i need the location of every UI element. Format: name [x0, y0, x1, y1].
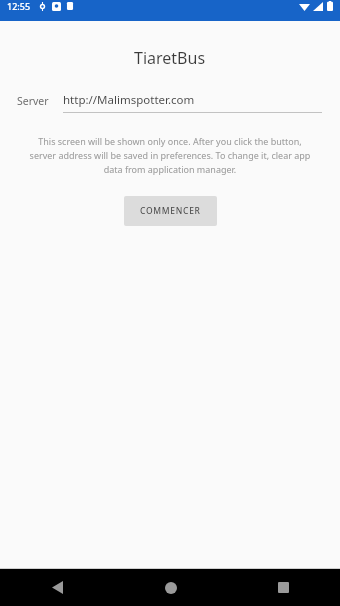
staticText: 12:55 — [7, 0, 31, 12]
button[interactable]: http://Malimspotter.com — [63, 92, 322, 113]
staticText: http://Malimspotter.com — [63, 92, 195, 108]
button[interactable]: Recent apps — [227, 582, 340, 593]
staticText: Server — [17, 94, 49, 108]
button[interactable]: Home — [114, 582, 227, 594]
button[interactable]: Back — [0, 581, 114, 594]
button[interactable]: COMMENCER — [124, 196, 217, 226]
staticText: TiaretBus — [134, 47, 206, 69]
staticText: COMMENCER — [140, 205, 201, 217]
staticText: This screen will be shown only once. Aft… — [24, 135, 316, 176]
